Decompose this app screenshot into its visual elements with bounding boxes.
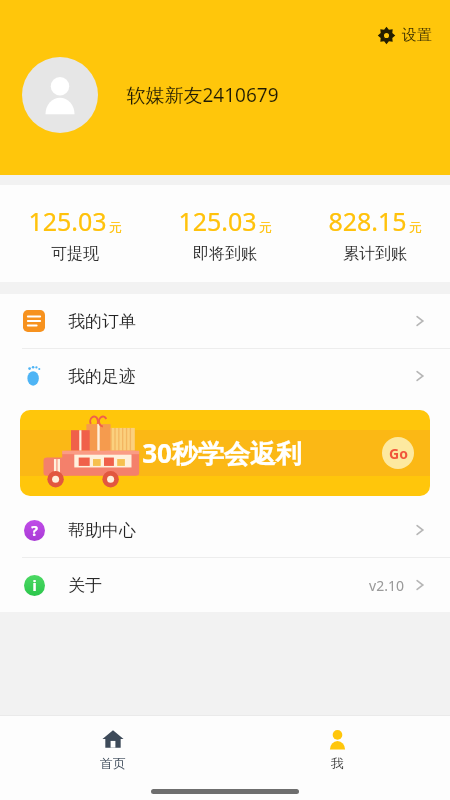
staticText: 帮助中心	[68, 520, 136, 541]
staticText: 设置	[402, 26, 432, 45]
button[interactable]: 125.03	[150, 198, 300, 270]
staticText: 我的订单	[68, 311, 136, 332]
staticText: 累计到账	[343, 244, 407, 264]
button[interactable]: Settings	[373, 22, 436, 49]
button[interactable]: 我的足迹	[0, 349, 450, 403]
button[interactable]: 我	[225, 716, 450, 782]
staticText: Go	[389, 444, 408, 463]
button[interactable]: 我的订单	[0, 294, 450, 348]
button[interactable]: 软媒新友2410679	[22, 57, 279, 133]
staticText: ?	[31, 521, 38, 540]
staticText: 我	[331, 755, 344, 771]
staticText: 125.03	[178, 204, 257, 238]
staticText: v2.10	[369, 576, 404, 595]
staticText: 首页	[100, 755, 126, 771]
staticText: 即将到账	[193, 244, 257, 264]
other: Settings	[377, 26, 396, 45]
staticText: i	[32, 576, 37, 595]
other: Home	[101, 727, 125, 751]
staticText: 关于	[68, 575, 102, 596]
staticText: 元	[409, 219, 422, 235]
staticText: 我的足迹	[68, 366, 136, 387]
staticText: 828.15	[328, 204, 407, 238]
button[interactable]: ?	[0, 503, 450, 557]
button[interactable]: Home	[0, 716, 225, 782]
button[interactable]: i	[0, 558, 450, 612]
button[interactable]: 828.15	[300, 198, 450, 270]
staticText: 软媒新友2410679	[126, 82, 279, 108]
staticText: 元	[109, 219, 122, 235]
button[interactable]: 30秒学会返利	[20, 410, 430, 496]
staticText: 可提现	[51, 244, 99, 264]
staticText: 125.03	[28, 204, 107, 238]
button[interactable]: 125.03	[0, 198, 150, 270]
staticText: 30秒学会返利	[142, 435, 302, 471]
staticText: 元	[259, 219, 272, 235]
